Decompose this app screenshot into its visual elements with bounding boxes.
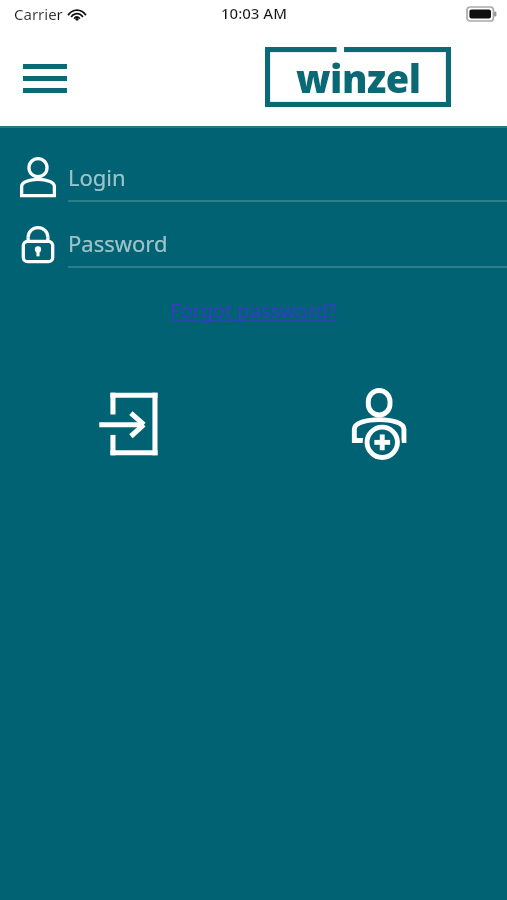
button[interactable]: Login	[0, 148, 507, 208]
button[interactable]: Menu	[18, 52, 74, 102]
staticText: Carrier	[14, 4, 63, 24]
staticText: Login	[68, 162, 126, 192]
button[interactable]: Sign in	[98, 390, 160, 458]
staticText: Password	[68, 228, 168, 258]
staticText: 10:03 AM	[221, 3, 287, 23]
button[interactable]: Forgot password?	[164, 293, 343, 328]
staticText: Forgot password?	[170, 297, 337, 324]
staticText: winzel	[296, 52, 421, 104]
button[interactable]: Register new user	[350, 388, 412, 460]
button[interactable]: Password	[0, 214, 507, 274]
